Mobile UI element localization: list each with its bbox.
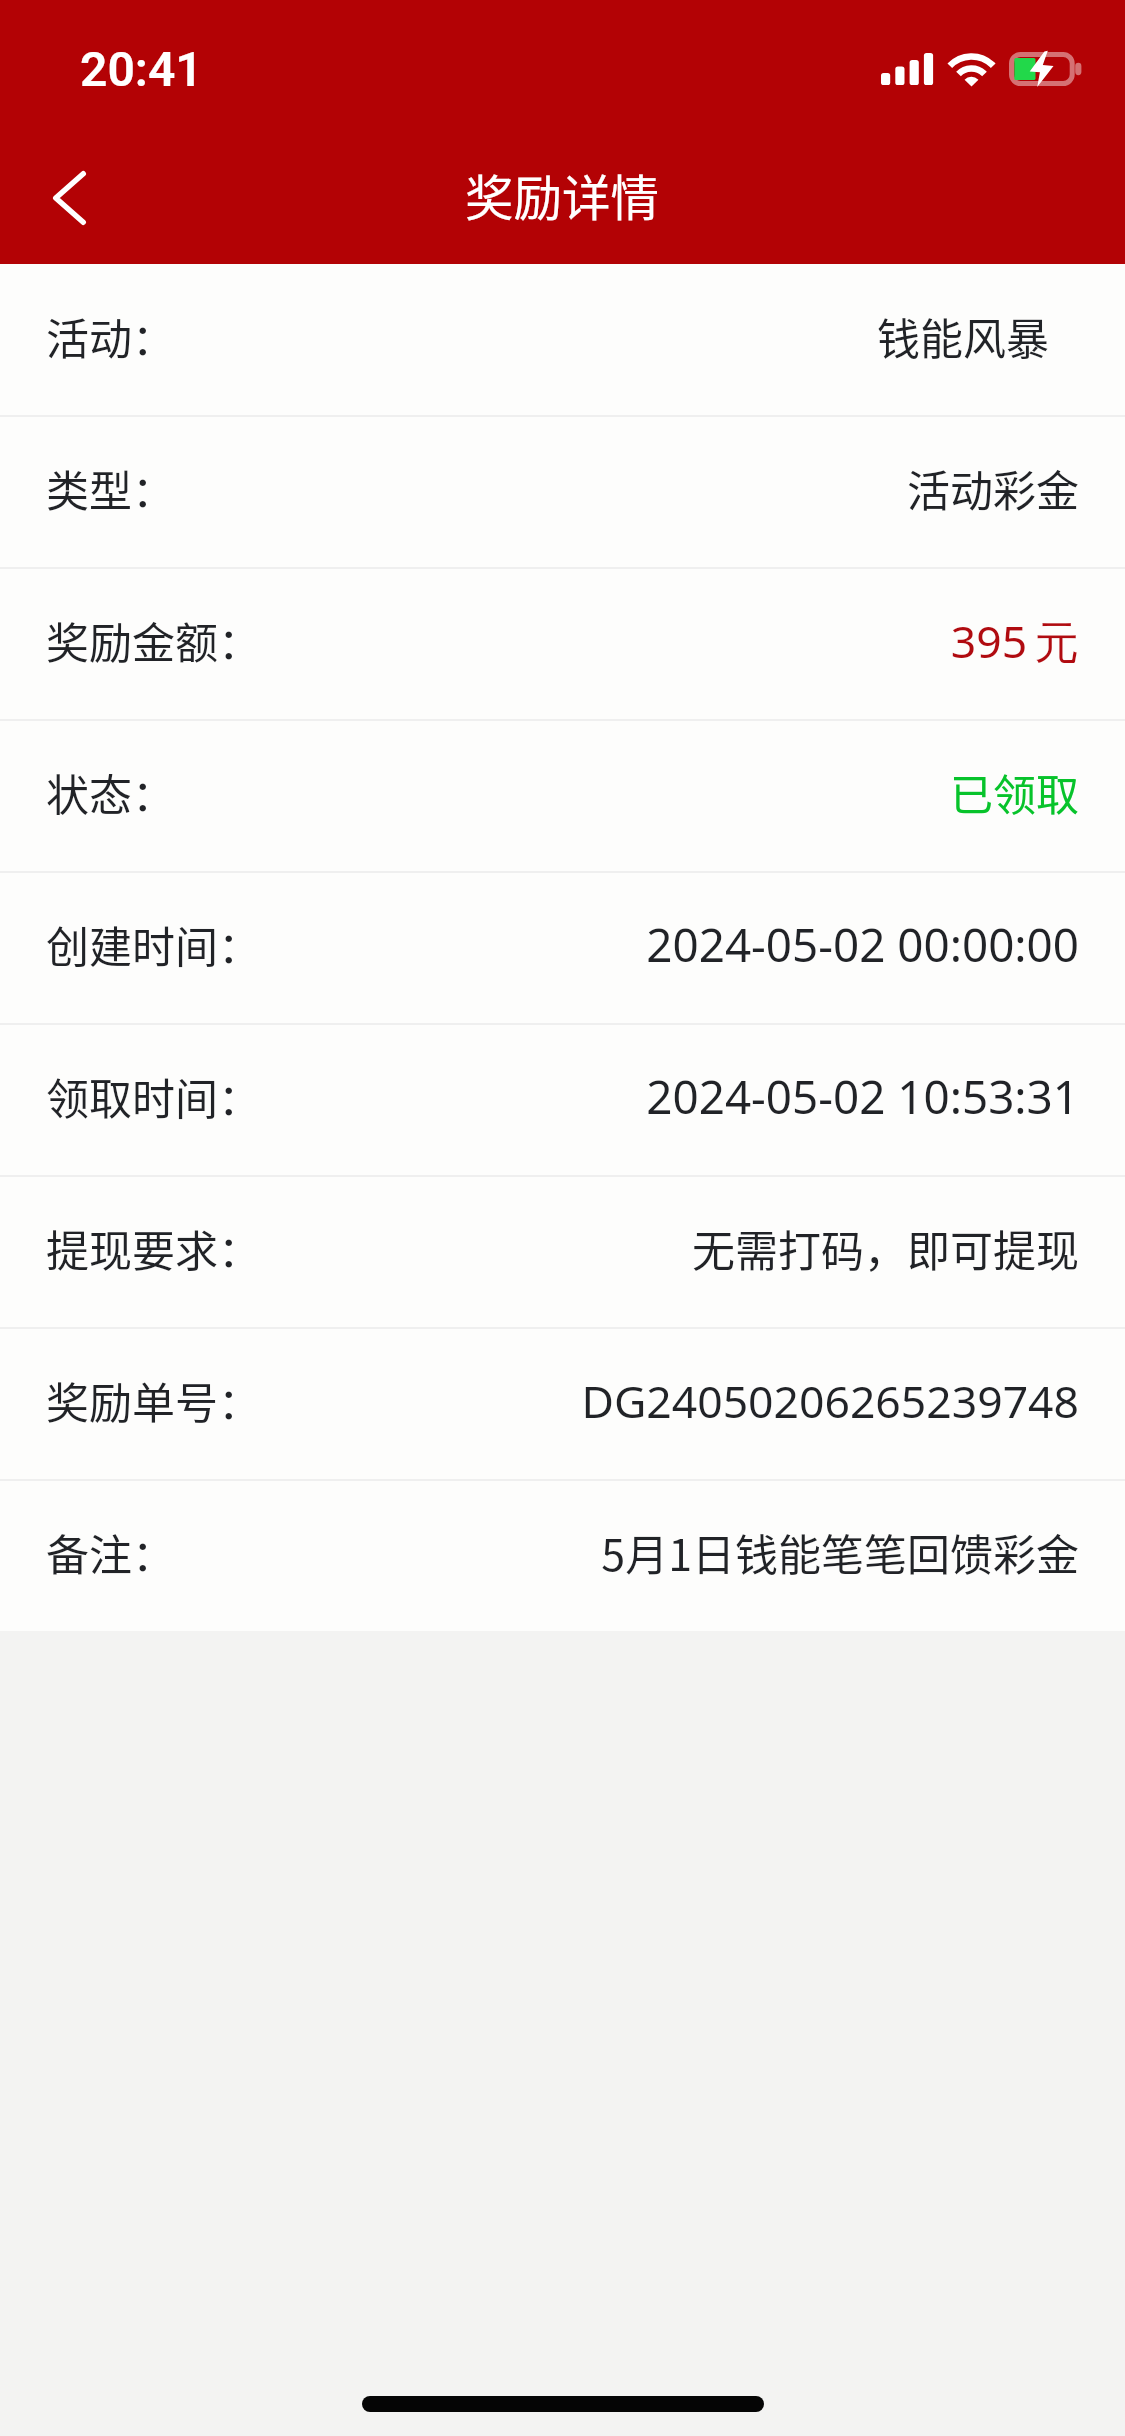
staticText: 领取时间： bbox=[46, 1065, 261, 1127]
staticText: 活动彩金 bbox=[907, 457, 1079, 519]
staticText: 钱能风暴 bbox=[877, 305, 1049, 367]
staticText: 已领取 bbox=[950, 761, 1079, 823]
staticText: 状态： bbox=[46, 761, 175, 823]
staticText: 创建时间： bbox=[46, 913, 261, 975]
button[interactable]: 状态： bbox=[0, 721, 1125, 871]
button[interactable]: 返回 bbox=[14, 143, 124, 253]
button[interactable]: 备注： bbox=[0, 1481, 1125, 1631]
staticText: 奖励金额： bbox=[46, 609, 261, 671]
staticText: 5月1日钱能笔笔回馈彩金 bbox=[601, 1521, 1079, 1583]
staticText: 奖励单号： bbox=[46, 1369, 261, 1431]
other: 电池充电中 bbox=[1009, 49, 1082, 89]
button[interactable]: 创建时间： bbox=[0, 873, 1125, 1023]
staticText: 20:41 bbox=[80, 41, 203, 97]
staticText: 提现要求： bbox=[46, 1217, 261, 1279]
staticText: 类型： bbox=[46, 457, 175, 519]
button[interactable]: 类型： bbox=[0, 417, 1125, 567]
staticText: 2024-05-02 10:53:31 bbox=[646, 1065, 1079, 1127]
button[interactable]: 提现要求： bbox=[0, 1177, 1125, 1327]
other: 信号 bbox=[881, 51, 933, 85]
staticText: 395 元 bbox=[950, 610, 1079, 671]
button[interactable]: 奖励金额： bbox=[0, 569, 1125, 719]
button[interactable]: 领取时间： bbox=[0, 1025, 1125, 1175]
button[interactable]: 奖励单号： bbox=[0, 1329, 1125, 1479]
staticText: 奖励详情 bbox=[465, 160, 660, 230]
staticText: 无需打码，即可提现 bbox=[692, 1217, 1079, 1279]
staticText: 备注： bbox=[46, 1521, 175, 1583]
staticText: DG24050206265239748 bbox=[581, 1370, 1079, 1431]
staticText: 2024-05-02 00:00:00 bbox=[646, 913, 1079, 975]
button[interactable]: 活动： bbox=[0, 264, 1125, 415]
other: Wi-Fi bbox=[948, 53, 995, 87]
staticText: 活动： bbox=[46, 305, 175, 367]
